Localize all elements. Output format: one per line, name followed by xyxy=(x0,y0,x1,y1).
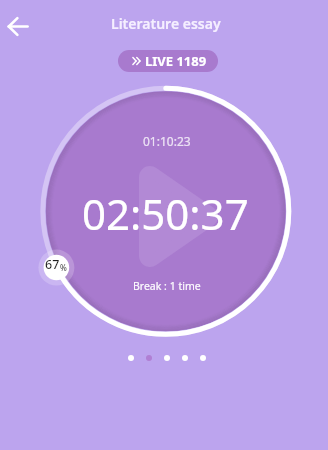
staticText: % xyxy=(60,262,67,273)
staticText: Literature essay xyxy=(111,14,221,33)
staticText: 02:50:37 xyxy=(82,185,249,242)
staticText: LIVE 1189 xyxy=(145,52,207,70)
staticText: 01:10:23 xyxy=(143,133,191,149)
button[interactable]: Page 4 xyxy=(182,355,188,361)
button[interactable]: Back xyxy=(3,11,33,41)
button[interactable]: LIVE 1189 xyxy=(118,50,218,72)
staticText: 67 xyxy=(45,256,60,273)
button[interactable]: Page 1 xyxy=(128,355,134,361)
staticText: Break : 1 time xyxy=(133,279,201,293)
button[interactable]: Page 3 xyxy=(164,355,170,361)
button[interactable]: Page 2 xyxy=(146,355,152,361)
button[interactable]: Page 5 xyxy=(200,355,206,361)
